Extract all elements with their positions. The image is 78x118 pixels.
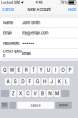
staticText: C xyxy=(26,91,29,96)
button[interactable]: B xyxy=(39,90,45,97)
button[interactable]: Z xyxy=(10,90,16,97)
button[interactable]: Email xyxy=(0,28,78,38)
staticText: Password xyxy=(3,41,19,46)
staticText: W xyxy=(10,67,14,73)
button[interactable]: U xyxy=(45,66,51,73)
staticText: H xyxy=(43,79,46,84)
staticText: R xyxy=(25,67,28,73)
button[interactable]: return xyxy=(55,102,72,109)
staticText: T xyxy=(32,67,35,73)
staticText: my@email.com xyxy=(22,31,48,35)
staticText: John Smith xyxy=(22,21,40,25)
staticText: New Account xyxy=(27,7,50,12)
button[interactable]: V xyxy=(32,90,38,97)
staticText: V xyxy=(34,91,37,96)
staticText: L xyxy=(65,79,68,84)
button[interactable]: Password xyxy=(0,38,78,49)
button[interactable]: K xyxy=(56,78,62,85)
button[interactable]: W xyxy=(9,66,15,73)
button[interactable]: R xyxy=(23,66,29,73)
staticText: G xyxy=(36,79,39,84)
button[interactable]: T xyxy=(30,66,37,73)
button[interactable]: C xyxy=(25,90,31,97)
staticText: Email xyxy=(22,51,31,56)
staticText: •••••• xyxy=(22,41,34,46)
button[interactable]: S xyxy=(12,78,18,85)
button[interactable]: Description xyxy=(0,49,78,59)
staticText: Y xyxy=(39,67,42,73)
staticText: Cancel xyxy=(2,7,14,12)
button[interactable]: Name xyxy=(0,18,78,28)
staticText: 4:46 xyxy=(35,1,42,4)
button[interactable]: O xyxy=(60,66,66,73)
button[interactable]: 123 xyxy=(1,102,8,109)
staticText: Locked SIM xyxy=(1,1,20,4)
button[interactable]: space xyxy=(17,102,54,109)
staticText: Description xyxy=(3,49,22,58)
staticText: return xyxy=(59,103,68,107)
staticText: space xyxy=(31,103,41,107)
staticText: Next xyxy=(68,7,76,12)
staticText: F xyxy=(28,79,31,84)
staticText: Name xyxy=(3,21,13,25)
button[interactable]: A xyxy=(5,78,11,85)
button[interactable]: Cancel xyxy=(0,5,16,14)
staticText: 123 xyxy=(2,103,7,107)
staticText: S xyxy=(14,79,17,84)
button[interactable]: G xyxy=(34,78,40,85)
button[interactable]: L xyxy=(63,78,69,85)
staticText: I xyxy=(55,67,56,73)
staticText: E xyxy=(17,67,20,73)
button[interactable]: Y xyxy=(38,66,44,73)
button[interactable]: Next xyxy=(66,5,78,14)
staticText: K xyxy=(58,79,61,84)
staticText: J xyxy=(50,79,53,84)
button[interactable] xyxy=(61,90,69,97)
staticText: U xyxy=(47,67,50,73)
button[interactable]: X xyxy=(17,90,24,97)
button[interactable]: I xyxy=(52,66,59,73)
button[interactable]: E xyxy=(16,66,22,73)
staticText: P xyxy=(69,67,72,73)
staticText: N xyxy=(48,91,51,96)
staticText: 76% xyxy=(60,1,67,4)
button[interactable]: D xyxy=(20,78,26,85)
button[interactable] xyxy=(9,102,16,109)
button[interactable]: Q xyxy=(1,66,7,73)
staticText: Email xyxy=(3,31,12,35)
button[interactable]: H xyxy=(41,78,48,85)
button[interactable]: J xyxy=(49,78,55,85)
button[interactable]: P xyxy=(67,66,73,73)
button[interactable]: F xyxy=(27,78,33,85)
button[interactable]: N xyxy=(47,90,53,97)
button[interactable]: M xyxy=(54,90,60,97)
staticText: Z xyxy=(12,91,15,96)
staticText: Q xyxy=(3,67,6,73)
staticText: M xyxy=(55,91,59,96)
staticText: X xyxy=(19,91,22,96)
staticText: D xyxy=(21,79,24,84)
staticText: B xyxy=(41,91,44,96)
staticText: A xyxy=(7,79,10,84)
staticText: O xyxy=(61,67,64,73)
